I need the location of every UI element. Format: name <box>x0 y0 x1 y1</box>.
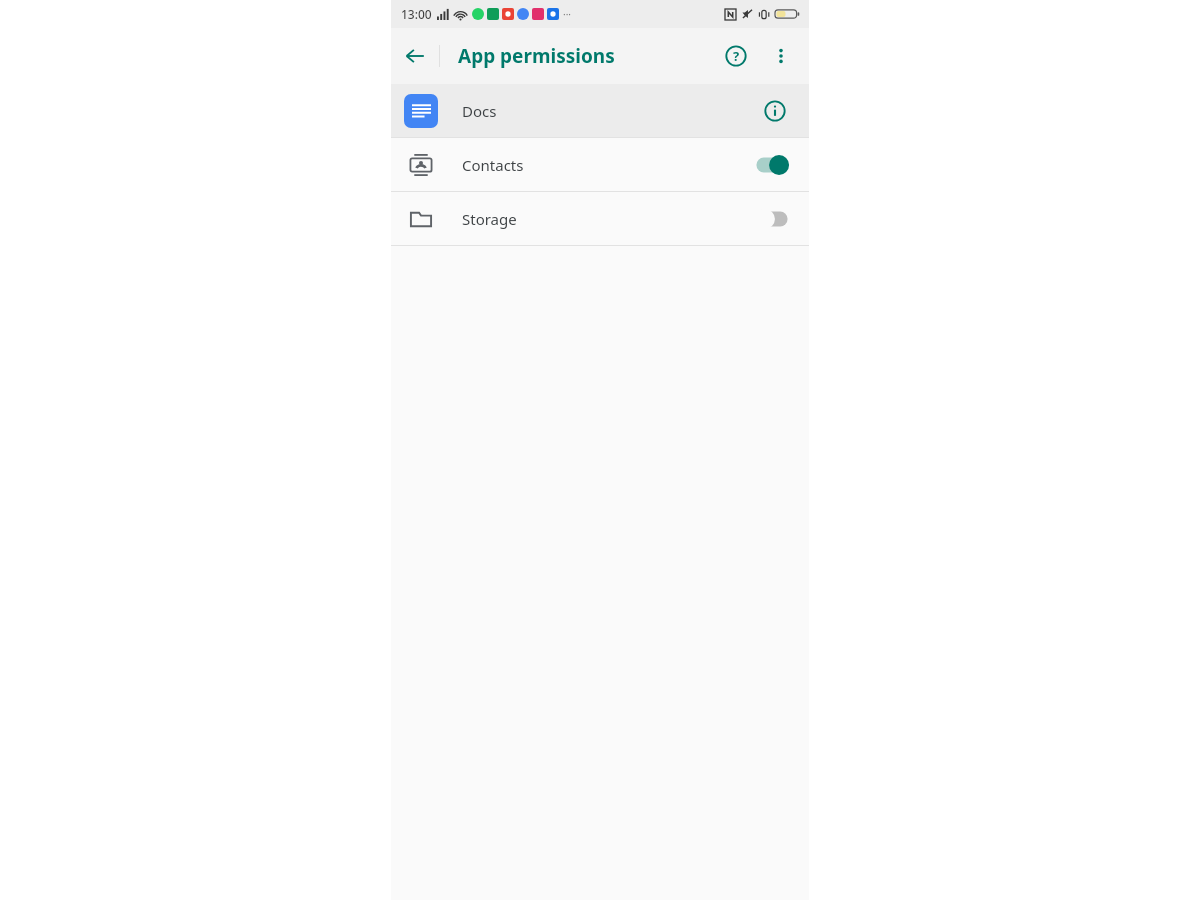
button[interactable]: More options <box>759 34 803 78</box>
button[interactable]: Toggle on <box>749 148 795 182</box>
staticText: ? <box>733 47 740 65</box>
button[interactable]: Docs <box>391 84 809 137</box>
staticText: Contacts <box>462 155 524 175</box>
staticText: Docs <box>462 101 497 121</box>
staticText: 13:00 <box>401 6 432 22</box>
button[interactable]: Toggle off <box>749 202 795 236</box>
button[interactable]: Contacts <box>391 138 809 191</box>
button[interactable]: Storage <box>391 192 809 245</box>
staticText: App permissions <box>458 43 615 69</box>
staticText: ··· <box>563 7 572 21</box>
button[interactable]: Back <box>391 32 439 80</box>
button[interactable]: Info <box>755 91 795 131</box>
staticText: Storage <box>462 209 517 229</box>
button[interactable]: Help <box>713 33 759 79</box>
